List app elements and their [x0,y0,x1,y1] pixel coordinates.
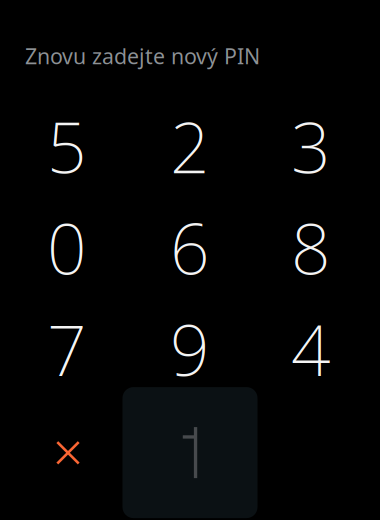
button[interactable]: 2 [122,81,257,212]
button[interactable]: 4 [243,283,378,414]
staticText: 2 [170,100,210,192]
button[interactable]: 6 [122,182,257,313]
button[interactable]: 8 [243,182,378,313]
button[interactable]: 3 [243,81,378,212]
button[interactable]: 9 [122,283,257,414]
button[interactable]: Delete [0,387,135,518]
staticText: Znovu zadejte nový PIN [25,42,260,70]
staticText: 6 [170,201,210,294]
button[interactable] [122,387,257,518]
staticText: 0 [47,201,87,294]
staticText: 7 [47,303,87,395]
button[interactable]: 7 [0,283,134,414]
staticText: 5 [47,100,87,192]
staticText: 9 [170,303,210,395]
staticText: 3 [291,100,331,192]
button[interactable]: 5 [0,81,134,212]
staticText: 8 [291,201,331,294]
button[interactable]: 0 [0,182,134,313]
staticText: 4 [291,303,331,395]
